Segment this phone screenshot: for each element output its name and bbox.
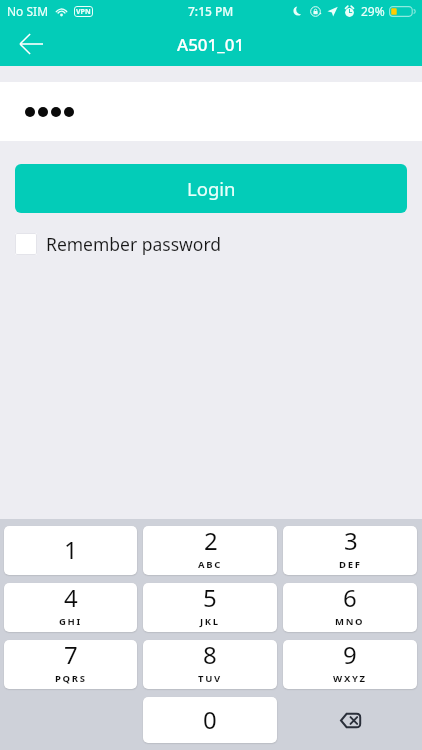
staticText: VPN bbox=[76, 7, 91, 17]
staticText: DEF bbox=[339, 558, 362, 571]
staticText: 0 bbox=[203, 703, 217, 736]
staticText: 6 bbox=[343, 583, 357, 614]
button[interactable]: 9 bbox=[283, 640, 417, 689]
button[interactable]: Login bbox=[15, 164, 407, 213]
staticText: 7:15 PM bbox=[188, 3, 234, 19]
button[interactable]: 2 bbox=[143, 526, 277, 575]
staticText: ABC bbox=[198, 558, 223, 571]
staticText: 4 bbox=[64, 583, 78, 614]
button[interactable]: 5 bbox=[143, 583, 277, 632]
button[interactable]: 7 bbox=[4, 640, 137, 689]
staticText: 3 bbox=[344, 526, 358, 557]
button[interactable]: 4 bbox=[4, 583, 137, 632]
staticText: JKL bbox=[200, 615, 220, 628]
staticText: A501_01 bbox=[177, 33, 245, 56]
staticText: 1 bbox=[64, 533, 78, 566]
staticText: PQRS bbox=[55, 672, 87, 685]
button[interactable]: 6 bbox=[283, 583, 417, 632]
staticText: MNO bbox=[335, 615, 365, 628]
staticText: 8 bbox=[203, 640, 217, 671]
staticText: 5 bbox=[203, 583, 217, 614]
staticText: No SIM bbox=[7, 3, 49, 19]
button[interactable]: Back bbox=[0, 22, 62, 66]
staticText: GHI bbox=[59, 615, 82, 628]
staticText: TUV bbox=[198, 672, 222, 685]
staticText: 2 bbox=[204, 526, 218, 557]
button[interactable]: Remember password bbox=[15, 232, 422, 256]
button[interactable]: 8 bbox=[143, 640, 277, 689]
staticText: 7 bbox=[64, 640, 78, 671]
staticText: Login bbox=[187, 176, 236, 201]
staticText: 9 bbox=[343, 640, 357, 671]
button[interactable]: Backspace bbox=[283, 697, 417, 743]
button[interactable]: 0 bbox=[143, 697, 277, 743]
staticText: Remember password bbox=[46, 232, 222, 256]
button[interactable]: 3 bbox=[283, 526, 417, 575]
staticText: WXYZ bbox=[333, 672, 367, 685]
button[interactable]: 1 bbox=[4, 526, 137, 575]
staticText: 29% bbox=[361, 3, 385, 19]
